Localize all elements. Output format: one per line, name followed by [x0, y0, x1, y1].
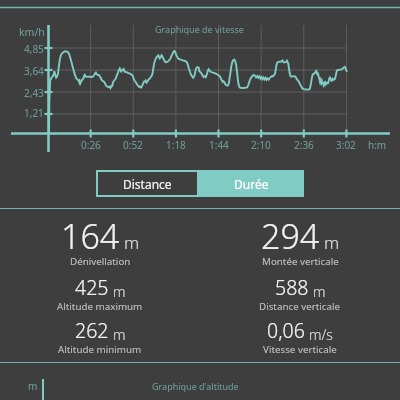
staticText: m — [113, 282, 126, 301]
staticText: Vitesse verticale — [263, 343, 337, 356]
staticText: Graphique de vitesse — [155, 23, 244, 35]
staticText: m — [313, 282, 326, 301]
staticText: 262 — [75, 317, 109, 344]
staticText: 1,21 — [24, 106, 44, 120]
button[interactable]: 0,06 — [200, 317, 400, 344]
button[interactable]: 425 — [0, 274, 200, 301]
staticText: 3:02 — [336, 138, 356, 152]
staticText: m — [28, 379, 38, 393]
button[interactable]: 588 — [200, 274, 400, 301]
staticText: km/h — [19, 25, 45, 39]
staticText: m — [113, 325, 126, 344]
staticText: 2:10 — [251, 138, 271, 152]
staticText: Dénivellation — [70, 255, 131, 268]
staticText: 0:26 — [81, 138, 101, 152]
staticText: 2,43 — [24, 86, 44, 100]
staticText: h:m — [368, 138, 387, 152]
staticText: 164 — [61, 213, 120, 259]
button[interactable]: Distance — [96, 170, 199, 197]
staticText: 2:36 — [294, 138, 314, 152]
button[interactable]: 164 — [0, 213, 200, 259]
staticText: 0,06 — [267, 317, 305, 344]
staticText: Graphique d'altitude — [152, 380, 239, 392]
staticText: Altitude minimum — [58, 343, 142, 356]
staticText: 588 — [275, 274, 309, 301]
staticText: m — [324, 231, 340, 254]
staticText: 0:52 — [123, 138, 143, 152]
staticText: 1:18 — [166, 138, 186, 152]
staticText: Distance — [123, 176, 172, 192]
staticText: 294 — [261, 213, 320, 259]
staticText: 425 — [75, 274, 109, 301]
staticText: Altitude maximum — [57, 300, 143, 313]
staticText: m/s — [309, 325, 333, 344]
staticText: m — [124, 231, 140, 254]
staticText: 4,85 — [24, 42, 44, 56]
button[interactable]: Durée — [199, 170, 304, 197]
staticText: Durée — [234, 176, 269, 192]
button[interactable]: 262 — [0, 317, 200, 344]
staticText: 3,64 — [24, 64, 44, 78]
staticText: 1:44 — [209, 138, 229, 152]
button[interactable]: 294 — [200, 213, 400, 259]
staticText: Distance verticale — [259, 300, 341, 313]
staticText: Montée verticale — [262, 255, 339, 268]
